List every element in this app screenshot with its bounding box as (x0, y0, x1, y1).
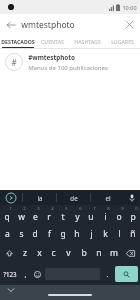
button[interactable]: la (23, 190, 56, 205)
button[interactable]: 5 (56, 205, 70, 224)
button[interactable]: # (0, 49, 140, 75)
staticText: j (90, 228, 93, 240)
button[interactable]: Back (0, 14, 21, 35)
button[interactable]: Clear (119, 14, 140, 35)
button[interactable]: el (91, 190, 124, 205)
staticText: k (103, 228, 108, 240)
button[interactable]: k (98, 224, 112, 243)
button[interactable]: 9 (112, 205, 126, 224)
staticText: w (18, 211, 25, 223)
staticText: wmtestphoto (21, 19, 75, 31)
button[interactable]: Expand toolbar (0, 190, 22, 205)
staticText: f (48, 228, 51, 240)
button[interactable]: LUGARES (105, 35, 140, 48)
staticText: de (70, 194, 78, 202)
button[interactable]: d (28, 224, 42, 243)
staticText: 6 (79, 206, 82, 212)
button[interactable]: j (84, 224, 98, 243)
button[interactable]: wmtestphoto (21, 19, 119, 31)
staticText: 8 (107, 206, 110, 212)
button[interactable]: CUENTAS (35, 35, 70, 48)
staticText: m (110, 247, 118, 259)
button[interactable]: Search (115, 266, 138, 282)
button[interactable]: g (56, 224, 70, 243)
staticText: g (60, 228, 66, 240)
staticText: 3 (37, 206, 40, 212)
staticText: # (11, 57, 17, 68)
button[interactable]: 8 (98, 205, 112, 224)
staticText: u (88, 211, 94, 223)
button[interactable]: 6 (70, 205, 84, 224)
staticText: #wmtestphoto (28, 53, 75, 62)
staticText: a (5, 228, 10, 240)
staticText: d (32, 228, 38, 240)
staticText: el (105, 194, 111, 202)
staticText: e (33, 211, 38, 223)
staticText: 7 (93, 206, 96, 212)
staticText: c (51, 247, 56, 259)
staticText: p (130, 211, 136, 223)
staticText: h (74, 228, 80, 240)
staticText: 10:00 (122, 4, 137, 11)
button[interactable]: z (18, 243, 32, 263)
staticText: b (81, 247, 87, 259)
staticText: n (96, 247, 102, 259)
staticText: CUENTAS (41, 38, 64, 45)
button[interactable]: f (42, 224, 56, 243)
button[interactable]: 2 (14, 205, 28, 224)
button[interactable]: 7 (84, 205, 98, 224)
button[interactable]: h (70, 224, 84, 243)
staticText: Menos de 100 publicaciones (28, 64, 108, 72)
staticText: LUGARES (111, 38, 134, 45)
button[interactable]: Hide keyboard (0, 285, 22, 294)
staticText: q (4, 211, 10, 223)
button[interactable]: 3 (28, 205, 42, 224)
button[interactable]: v (61, 243, 76, 263)
staticText: DESTACADOS (1, 38, 35, 45)
staticText: x (37, 247, 42, 259)
staticText: s (19, 228, 24, 240)
button[interactable]: DESTACADOS (0, 35, 35, 48)
staticText: t (61, 211, 65, 223)
button[interactable]: Voice input (124, 190, 140, 205)
button[interactable]: ñ (126, 224, 140, 243)
staticText: 4 (51, 206, 54, 212)
staticText: z (23, 247, 27, 259)
button[interactable]: n (91, 243, 106, 263)
staticText: , (24, 269, 27, 279)
button[interactable]: 4 (42, 205, 56, 224)
button[interactable]: x (32, 243, 46, 263)
button[interactable]: Shift (0, 243, 18, 263)
button[interactable]: c (46, 243, 61, 263)
staticText: l (118, 228, 121, 240)
staticText: 1 (9, 206, 12, 212)
button[interactable]: HASHTAGS (70, 35, 105, 48)
staticText: y (75, 211, 80, 223)
staticText: v (66, 247, 71, 259)
button[interactable]: ?123 (0, 263, 20, 285)
button[interactable]: 0 (126, 205, 140, 224)
button[interactable]: . (101, 263, 113, 285)
staticText: la (37, 194, 43, 202)
staticText: 0 (135, 206, 138, 212)
staticText: 2 (23, 206, 26, 212)
button[interactable]: , (20, 263, 31, 285)
button[interactable]: m (106, 243, 121, 263)
button[interactable]: 1 (0, 205, 14, 224)
staticText: r (47, 211, 51, 223)
button[interactable]: Emoji (31, 263, 44, 285)
button[interactable]: l (112, 224, 126, 243)
button[interactable]: a (0, 224, 14, 243)
button[interactable]: b (76, 243, 91, 263)
button[interactable]: Backspace (121, 243, 140, 263)
staticText: ñ (130, 228, 136, 240)
staticText: 5 (65, 206, 68, 212)
staticText: ?123 (3, 270, 17, 278)
staticText: . (106, 269, 109, 279)
staticText: o (116, 211, 122, 223)
button[interactable]: de (57, 190, 90, 205)
staticText: i (104, 211, 107, 223)
staticText: 9 (121, 206, 124, 212)
button[interactable]: s (14, 224, 28, 243)
